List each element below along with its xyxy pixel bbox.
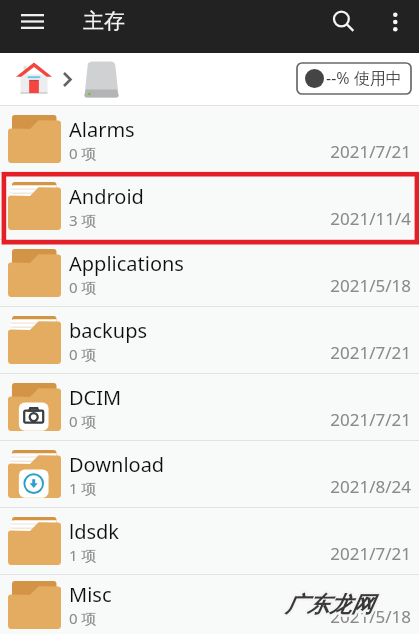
staticText: 广东龙网: [286, 592, 374, 620]
staticText: 广东龙网: [284, 591, 372, 619]
staticText: 0 项: [69, 411, 97, 431]
staticText: 1 项: [69, 545, 97, 565]
staticText: 2021/8/24: [330, 475, 411, 498]
button[interactable]: Alarms: [0, 106, 419, 172]
button[interactable]: Menu: [12, 1, 52, 41]
staticText: Misc: [69, 581, 112, 608]
staticText: 0 项: [69, 277, 97, 297]
staticText: 1 项: [69, 478, 97, 498]
staticText: Applications: [69, 250, 184, 277]
staticText: Download: [69, 451, 165, 478]
staticText: DCIM: [69, 384, 122, 411]
staticText: 3 项: [69, 210, 97, 230]
staticText: 广东龙网: [284, 593, 372, 621]
button[interactable]: Android: [0, 173, 419, 239]
staticText: 广东龙网: [287, 591, 375, 619]
staticText: 0 项: [69, 608, 97, 628]
staticText: 广东龙网: [286, 589, 374, 617]
staticText: 2021/7/21: [330, 408, 411, 431]
staticText: 2021/5/18: [330, 274, 411, 297]
staticText: 0 项: [69, 344, 97, 364]
staticText: 2021/5/18: [330, 605, 411, 628]
staticText: 广东龙网: [285, 592, 373, 620]
staticText: --% 使用中: [326, 67, 402, 89]
button[interactable]: --% 使用中: [297, 63, 411, 94]
staticText: 广东龙网: [283, 591, 371, 619]
staticText: 广东龙网: [286, 591, 374, 619]
staticText: 广东龙网: [287, 592, 375, 620]
button[interactable]: Applications: [0, 240, 419, 306]
staticText: Android: [69, 183, 144, 210]
button[interactable]: Home: [16, 61, 52, 97]
staticText: 广东龙网: [284, 590, 372, 618]
staticText: 广东龙网: [285, 591, 373, 619]
staticText: 广东龙网: [284, 589, 372, 617]
staticText: 0 项: [69, 143, 97, 163]
button[interactable]: backups: [0, 307, 419, 373]
staticText: 2021/7/21: [330, 542, 411, 565]
staticText: 2021/7/21: [330, 140, 411, 163]
staticText: Alarms: [69, 116, 135, 143]
staticText: ldsdk: [69, 518, 120, 545]
staticText: 广东龙网: [287, 590, 375, 618]
button[interactable]: Internal storage: [84, 60, 119, 98]
staticText: 广东龙网: [283, 590, 371, 618]
staticText: backups: [69, 317, 148, 344]
staticText: 主存: [83, 8, 125, 34]
staticText: 广东龙网: [286, 590, 374, 618]
staticText: 广东龙网: [283, 592, 371, 620]
staticText: 广东龙网: [285, 589, 373, 617]
button[interactable]: DCIM: [0, 374, 419, 440]
button[interactable]: Download: [0, 441, 419, 507]
staticText: 广东龙网: [285, 593, 373, 621]
staticText: 2021/11/4: [330, 207, 411, 230]
staticText: 广东龙网: [286, 593, 374, 621]
staticText: 2021/7/21: [330, 341, 411, 364]
staticText: 广东龙网: [284, 592, 372, 620]
button[interactable]: Search: [323, 1, 364, 42]
button[interactable]: More options: [374, 1, 415, 42]
button[interactable]: Misc: [0, 575, 419, 634]
button[interactable]: ldsdk: [0, 508, 419, 574]
staticText: 广东龙网: [285, 590, 373, 618]
